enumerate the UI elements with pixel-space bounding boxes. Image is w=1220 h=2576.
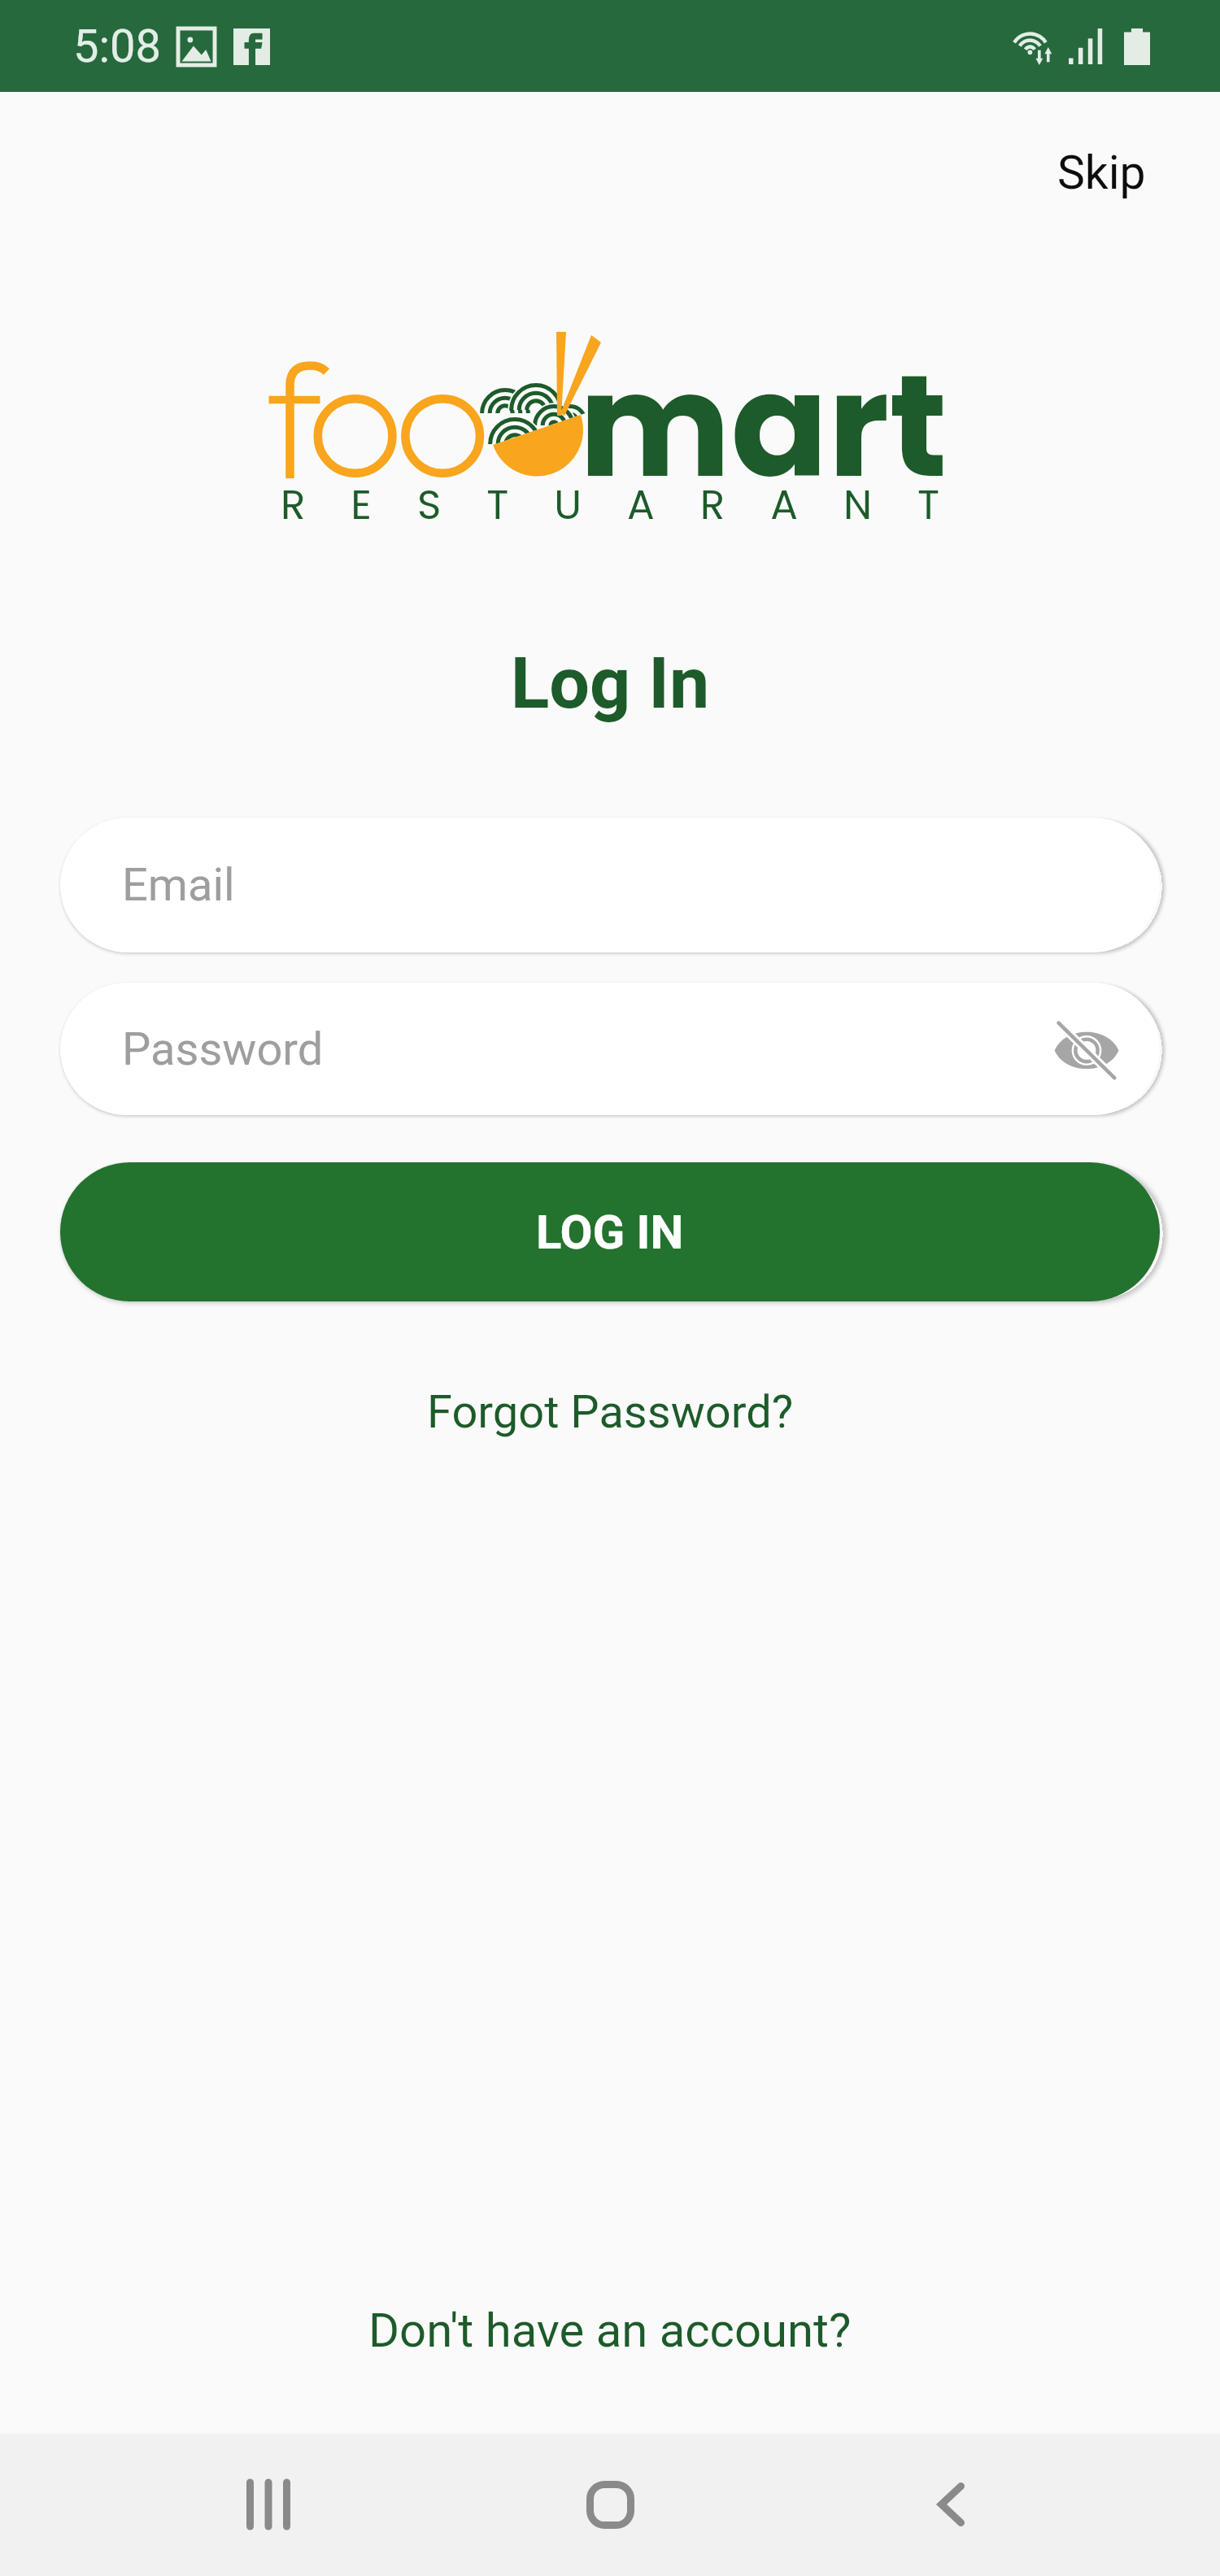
button[interactable]: Forgot Password?	[409, 1375, 812, 1449]
button[interactable]: Skip	[1041, 134, 1162, 211]
staticText: Skip	[1057, 146, 1146, 200]
staticText: Email	[122, 858, 235, 912]
staticText: LOG IN	[536, 1205, 684, 1260]
staticText: 5:08	[73, 20, 161, 73]
button[interactable]: Email	[60, 817, 1160, 952]
button[interactable]: Recent apps	[203, 2456, 333, 2553]
button[interactable]: Password	[60, 983, 1160, 1115]
button[interactable]: Back	[886, 2456, 1016, 2553]
staticText: Forgot Password?	[427, 1385, 794, 1439]
button[interactable]: Home	[545, 2456, 675, 2553]
button[interactable]: LOG IN	[60, 1162, 1160, 1301]
button[interactable]: Don't have an account?	[351, 2293, 869, 2368]
staticText: Don't have an account?	[368, 2303, 852, 2358]
staticText: Password	[122, 1022, 324, 1076]
staticText: mart	[579, 325, 948, 525]
staticText: Log In	[0, 641, 1220, 725]
staticText: RESTUARANT	[23, 477, 1220, 534]
button[interactable]: Show password	[1041, 1004, 1132, 1095]
